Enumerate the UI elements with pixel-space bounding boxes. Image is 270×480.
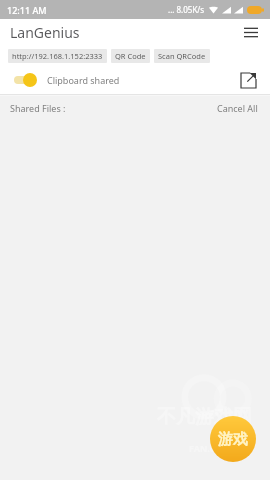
staticText: Scan QRCode	[158, 51, 206, 61]
button[interactable]: Menu	[238, 19, 264, 45]
staticText: 12:11 AM	[7, 4, 47, 16]
staticText: 游戏	[218, 430, 248, 449]
button[interactable]: QR Code	[111, 49, 150, 63]
staticText: http://192.168.1.152:2333	[12, 51, 103, 61]
staticText: 不凡游戏网	[157, 405, 252, 429]
staticText: FAN.COM	[189, 442, 231, 454]
staticText: ... 8.05K/s	[168, 4, 205, 15]
button[interactable]: Open in browser	[236, 68, 260, 92]
button[interactable]: Cancel All	[215, 100, 260, 116]
button[interactable]: Scan QRCode	[154, 49, 210, 63]
staticText: Shared Files :	[10, 102, 66, 114]
button[interactable]: http://192.168.1.152:2333	[8, 49, 107, 63]
button[interactable]: Clipboard shared	[12, 73, 126, 87]
staticText: Cancel All	[217, 102, 258, 114]
staticText: QR Code	[115, 51, 146, 61]
staticText: LanGenius	[10, 23, 80, 42]
staticText: Clipboard shared	[47, 74, 120, 86]
